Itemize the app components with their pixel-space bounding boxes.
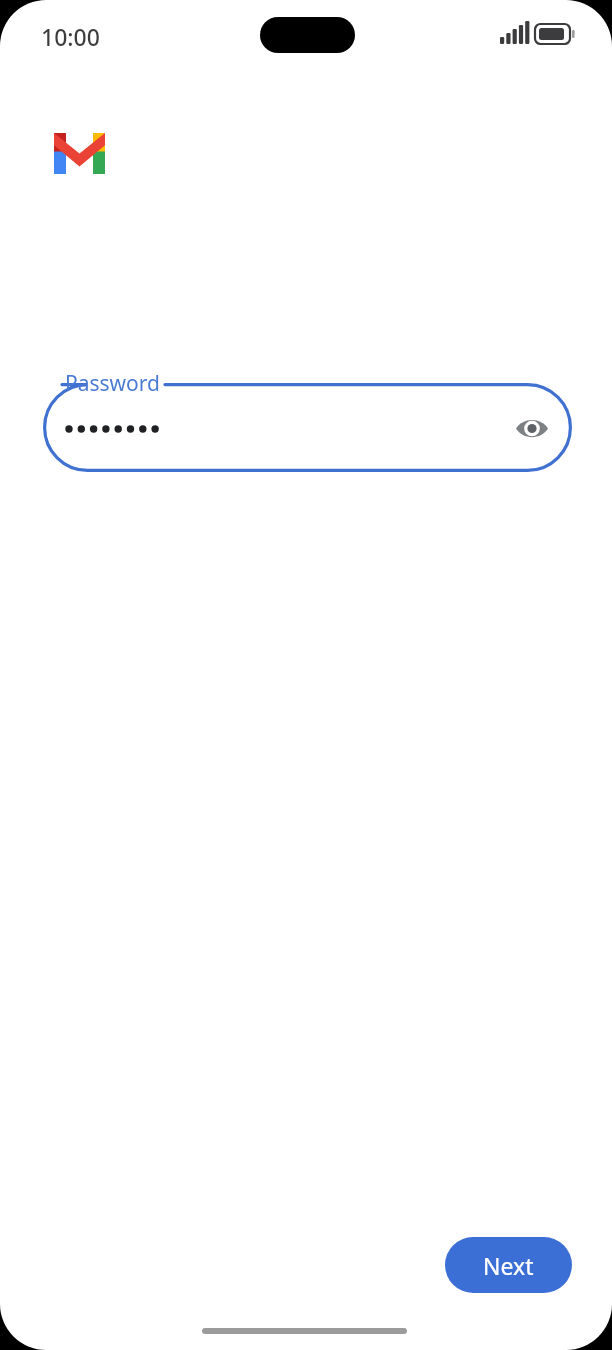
staticText: 10:00 bbox=[41, 21, 100, 52]
button[interactable]: Show password bbox=[509, 405, 555, 451]
staticText: Password bbox=[65, 369, 160, 398]
staticText: Next bbox=[483, 1250, 534, 1281]
other: Gmail bbox=[54, 133, 105, 174]
button[interactable]: Password bbox=[43, 383, 572, 472]
button[interactable]: Next bbox=[445, 1237, 572, 1293]
